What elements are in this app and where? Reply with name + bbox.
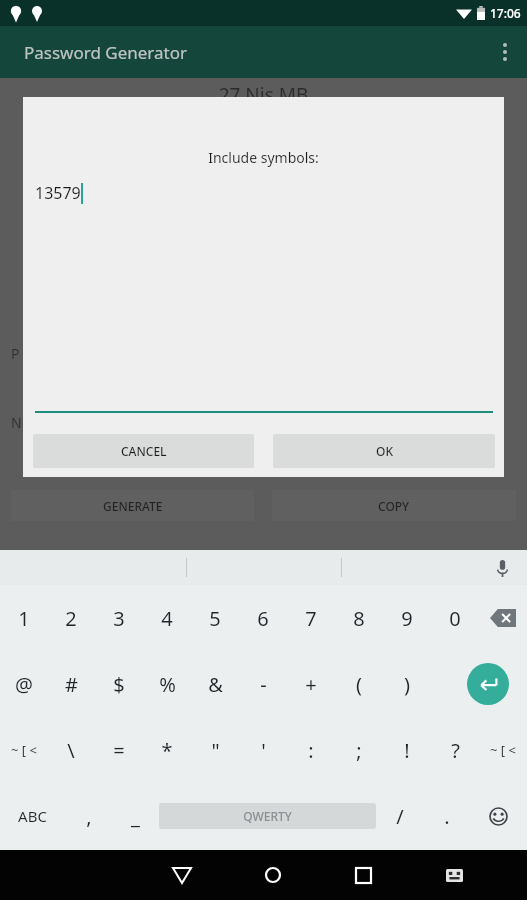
staticText: , bbox=[86, 803, 92, 830]
staticText: $ bbox=[113, 671, 125, 698]
staticText: ; bbox=[356, 737, 362, 764]
button[interactable]: # bbox=[47, 651, 95, 717]
button[interactable]: $ bbox=[95, 651, 143, 717]
staticText: ABC bbox=[18, 806, 47, 826]
staticText: ? bbox=[451, 737, 460, 764]
staticText: 0 bbox=[449, 605, 461, 632]
button[interactable]: OK bbox=[273, 434, 495, 468]
staticText: 2 bbox=[65, 605, 77, 632]
button[interactable]: ~ [ < bbox=[479, 717, 527, 783]
button[interactable]: Back bbox=[136, 850, 227, 900]
button[interactable]: _ bbox=[112, 783, 159, 849]
staticText: & bbox=[208, 671, 223, 698]
staticText: 6 bbox=[257, 605, 269, 632]
staticText: OK bbox=[376, 443, 393, 459]
staticText: ! bbox=[404, 737, 410, 764]
staticText: * bbox=[161, 737, 173, 764]
button[interactable]: Backspace bbox=[479, 585, 527, 651]
button[interactable]: * bbox=[143, 717, 191, 783]
staticText: ~ [ < bbox=[490, 741, 516, 759]
button[interactable]: Voice input bbox=[489, 555, 515, 581]
button[interactable]: ? bbox=[431, 717, 479, 783]
button[interactable]: 2 bbox=[47, 585, 95, 651]
staticText: " bbox=[211, 737, 220, 764]
staticText: . bbox=[444, 803, 450, 830]
button[interactable]: Recent apps bbox=[318, 850, 409, 900]
staticText: - bbox=[260, 671, 267, 698]
staticText: = bbox=[113, 737, 125, 764]
button[interactable]: / bbox=[376, 783, 423, 849]
button[interactable]: ABC bbox=[0, 783, 65, 849]
button[interactable]: CANCEL bbox=[33, 434, 254, 468]
staticText: / bbox=[396, 803, 404, 830]
staticText: ( bbox=[356, 671, 362, 698]
button[interactable]: QWERTY bbox=[159, 803, 376, 829]
button[interactable]: Home bbox=[227, 850, 318, 900]
staticText: Include symbols: bbox=[23, 148, 504, 167]
button[interactable]: ( bbox=[335, 651, 383, 717]
staticText: QWERTY bbox=[243, 808, 292, 824]
staticText: 17:06 bbox=[490, 5, 521, 21]
staticText: @ bbox=[15, 671, 33, 698]
button[interactable]: More options bbox=[483, 30, 527, 74]
button[interactable]: Enter bbox=[431, 651, 527, 717]
button[interactable]: ; bbox=[335, 717, 383, 783]
button[interactable]: = bbox=[95, 717, 143, 783]
staticText: 4 bbox=[161, 605, 173, 632]
staticText: _ bbox=[131, 803, 140, 830]
staticText: : bbox=[308, 737, 314, 764]
button[interactable]: - bbox=[239, 651, 287, 717]
staticText: 8 bbox=[353, 605, 365, 632]
button[interactable]: 4 bbox=[143, 585, 191, 651]
button[interactable]: 7 bbox=[287, 585, 335, 651]
staticText: ) bbox=[404, 671, 410, 698]
staticText: # bbox=[65, 671, 78, 698]
staticText: \ bbox=[67, 737, 75, 764]
button[interactable]: \ bbox=[47, 717, 95, 783]
button[interactable]: : bbox=[287, 717, 335, 783]
staticText: P bbox=[11, 344, 20, 363]
button[interactable]: + bbox=[287, 651, 335, 717]
staticText: Password Generator bbox=[24, 41, 188, 64]
button[interactable]: ~ [ < bbox=[0, 717, 47, 783]
button[interactable]: 0 bbox=[431, 585, 479, 651]
staticText: 3 bbox=[113, 605, 125, 632]
staticText: 1 bbox=[18, 605, 30, 632]
button[interactable]: % bbox=[143, 651, 191, 717]
staticText: GENERATE bbox=[103, 498, 163, 514]
staticText: ~ [ < bbox=[11, 741, 37, 759]
staticText: 27 Nis MB bbox=[0, 82, 527, 108]
staticText: 7 bbox=[305, 605, 317, 632]
staticText: 13579 bbox=[35, 182, 81, 204]
button[interactable]: Emoji bbox=[470, 783, 527, 849]
staticText: + bbox=[305, 671, 317, 698]
button[interactable]: , bbox=[65, 783, 112, 849]
button[interactable]: Switch keyboard bbox=[409, 850, 500, 900]
button[interactable]: " bbox=[191, 717, 239, 783]
button[interactable]: 5 bbox=[191, 585, 239, 651]
staticText: 5 bbox=[209, 605, 221, 632]
button[interactable]: 8 bbox=[335, 585, 383, 651]
staticText: CANCEL bbox=[121, 443, 167, 459]
button[interactable]: @ bbox=[0, 651, 47, 717]
button[interactable]: ' bbox=[239, 717, 287, 783]
button[interactable]: GENERATE bbox=[11, 490, 254, 521]
button[interactable]: & bbox=[191, 651, 239, 717]
staticText: 9 bbox=[401, 605, 413, 632]
staticText: ' bbox=[261, 737, 266, 764]
button[interactable]: 1 bbox=[0, 585, 47, 651]
button[interactable]: COPY bbox=[272, 490, 516, 521]
button[interactable]: . bbox=[423, 783, 470, 849]
button[interactable]: 9 bbox=[383, 585, 431, 651]
staticText: COPY bbox=[378, 498, 410, 514]
button[interactable]: ) bbox=[383, 651, 431, 717]
staticText: N bbox=[11, 413, 22, 432]
button[interactable]: ! bbox=[383, 717, 431, 783]
button[interactable]: 3 bbox=[95, 585, 143, 651]
staticText: % bbox=[159, 671, 176, 698]
button[interactable]: 6 bbox=[239, 585, 287, 651]
